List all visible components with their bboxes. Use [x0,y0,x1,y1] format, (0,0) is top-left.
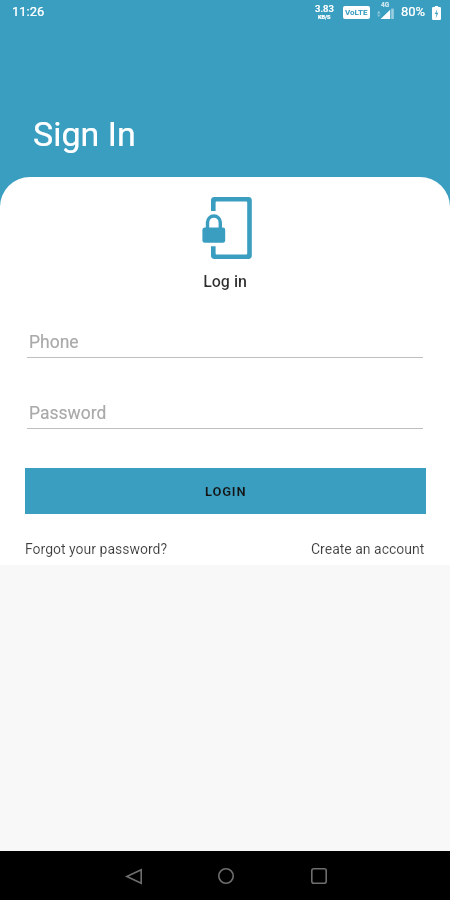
button[interactable]: Phone [27,332,423,358]
staticText: Log in [0,272,450,291]
staticText: Create an account [311,541,425,557]
button[interactable]: Home [180,852,272,900]
button[interactable]: LOGIN [25,468,426,514]
staticText: Sign In [33,114,136,154]
button[interactable]: Recent apps [273,852,364,900]
staticText: 11:26 [12,4,45,19]
button[interactable]: Password [27,403,423,429]
staticText: Phone [29,332,79,353]
button[interactable]: Forgot your password? [25,535,168,563]
staticText: 80% [401,4,426,19]
staticText: Forgot your password? [25,541,168,557]
staticText: VoLTE [345,8,368,17]
staticText: LOGIN [205,484,247,499]
staticText: Password [29,403,107,424]
staticText: 3.83 [315,3,334,14]
button[interactable]: Back [88,852,179,900]
button[interactable]: Create an account [311,535,425,563]
staticText: 4G [381,1,390,9]
staticText: KB/S [318,14,331,20]
